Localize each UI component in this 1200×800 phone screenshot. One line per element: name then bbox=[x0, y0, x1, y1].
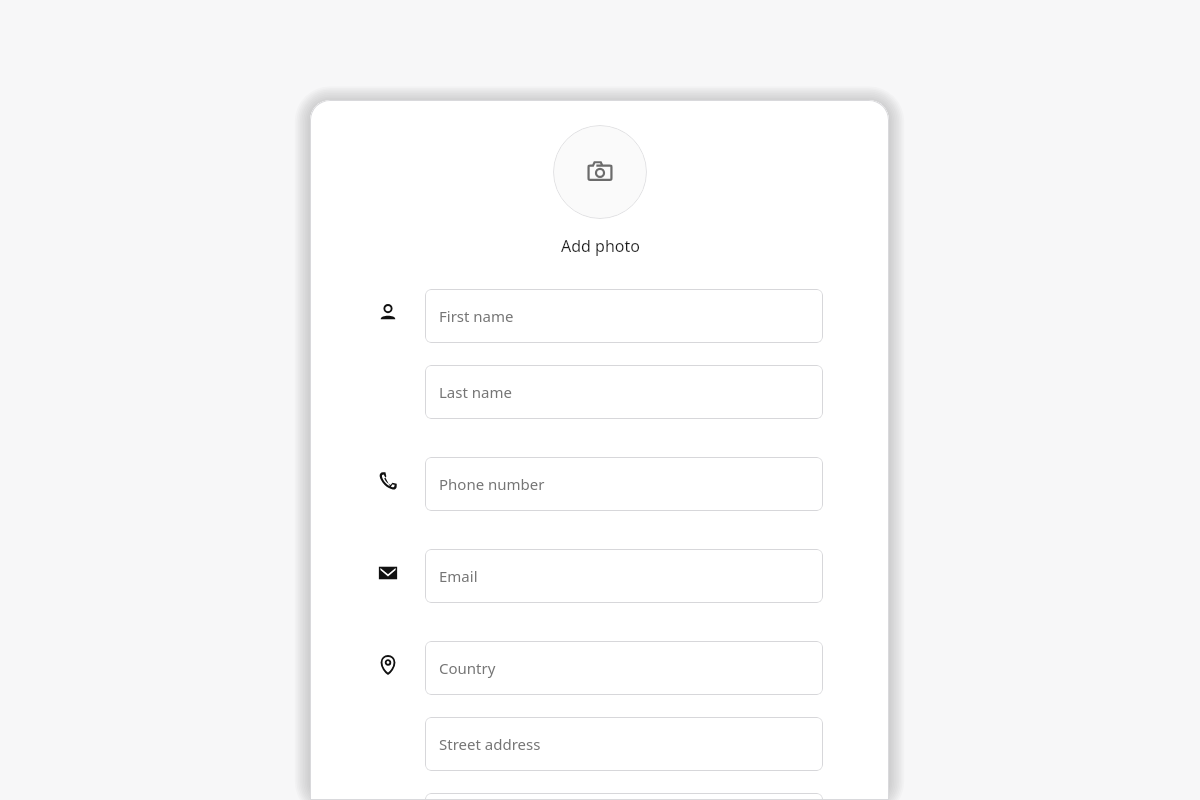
button[interactable]: Add photo bbox=[513, 233, 687, 259]
other: Email bbox=[376, 561, 400, 585]
staticText: Country bbox=[439, 658, 496, 678]
staticText: Email bbox=[439, 566, 478, 586]
staticText: Add photo bbox=[561, 235, 640, 257]
button[interactable]: Phone number bbox=[425, 457, 823, 511]
staticText: Street address bbox=[439, 734, 541, 754]
staticText: Last name bbox=[439, 382, 512, 402]
button[interactable]: Add photo bbox=[553, 125, 647, 219]
button[interactable]: Country bbox=[425, 641, 823, 695]
button[interactable] bbox=[425, 793, 823, 800]
other: Address bbox=[376, 653, 400, 677]
button[interactable]: Last name bbox=[425, 365, 823, 419]
other: Name bbox=[376, 301, 400, 325]
button[interactable]: First name bbox=[425, 289, 823, 343]
staticText: First name bbox=[439, 306, 514, 326]
other: Phone bbox=[376, 469, 400, 493]
staticText: Phone number bbox=[439, 474, 545, 494]
button[interactable]: Email bbox=[425, 549, 823, 603]
button[interactable]: Street address bbox=[425, 717, 823, 771]
